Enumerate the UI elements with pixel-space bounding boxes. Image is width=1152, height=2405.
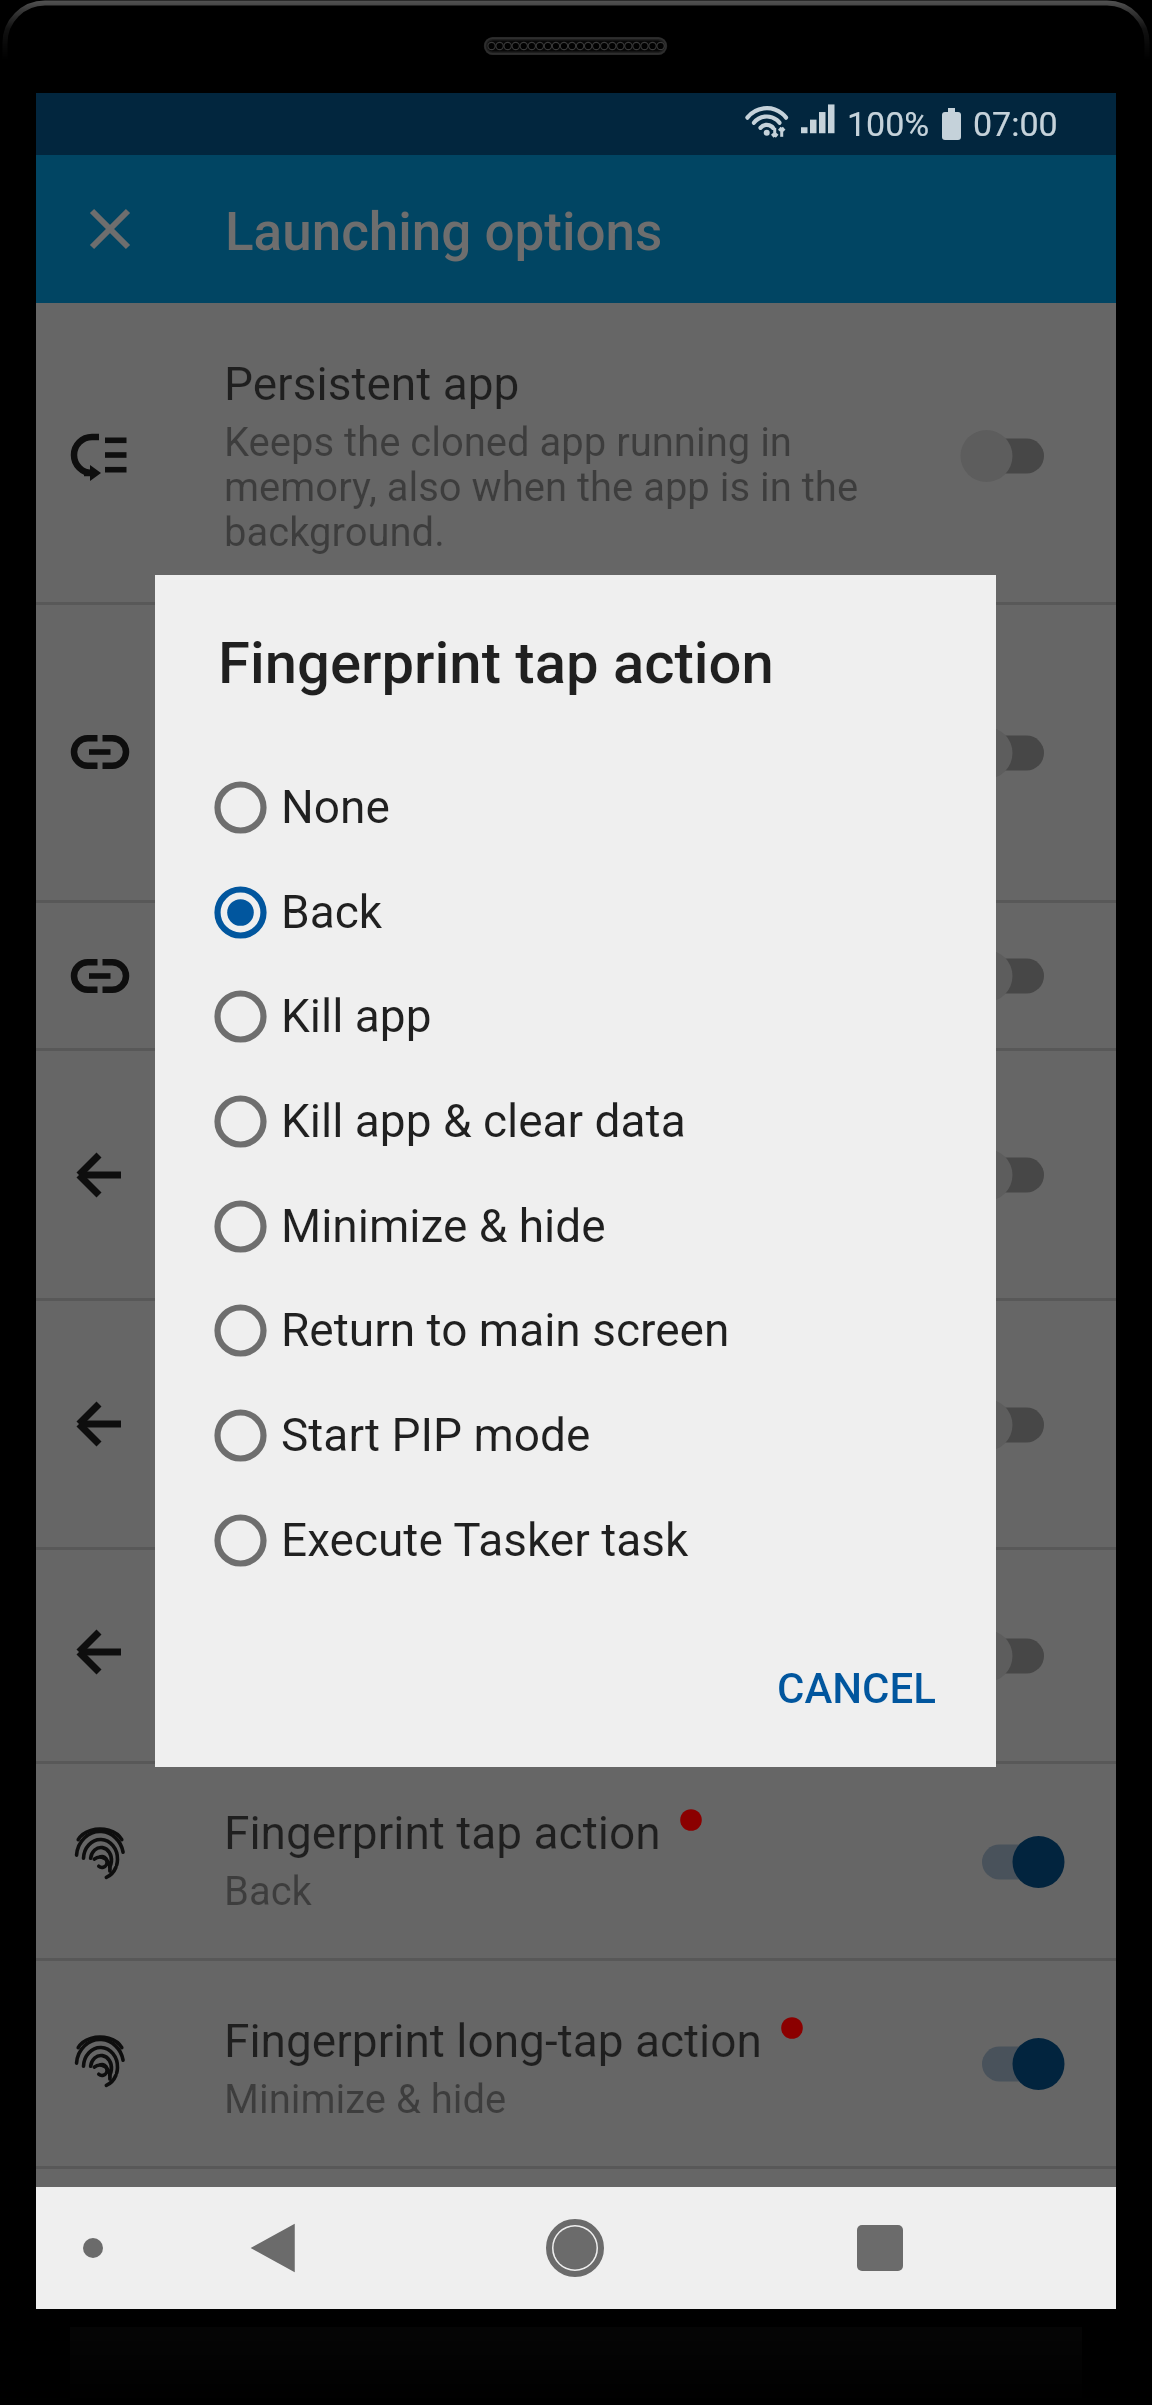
staticText: Minimize & hide	[281, 1199, 606, 1253]
staticText: Return to main screen	[281, 1303, 730, 1357]
button[interactable]: Home	[514, 2187, 636, 2309]
button[interactable]: Open links in this app	[36, 604, 1116, 902]
staticText: Exit on back	[224, 1351, 472, 1405]
staticText: Keeps the cloned app running in memory, …	[224, 419, 924, 555]
staticText: Open links in this app	[224, 655, 661, 709]
button[interactable]: Recents	[819, 2187, 941, 2309]
staticText: Fingerprint long-tap action	[224, 2014, 762, 2068]
button[interactable]: CANCEL	[745, 1640, 968, 1737]
staticText: Ask for confirmation before the clone ex…	[224, 1662, 924, 1753]
staticText: 100%	[847, 104, 930, 144]
button[interactable]: Minimize & hide	[155, 1174, 996, 1278]
staticText: Back to home	[224, 1102, 506, 1156]
staticText: Fingerprint tap action	[218, 629, 774, 697]
staticText: Persistent app	[224, 357, 520, 411]
staticText: Execute Tasker task	[281, 1513, 689, 1567]
button[interactable]: Return to main screen	[155, 1278, 996, 1382]
staticText: Fingerprint tap action	[224, 1806, 661, 1860]
staticText: 07:00	[973, 104, 1058, 144]
button[interactable]: Back to home	[36, 1050, 1116, 1300]
staticText: Pressing back twice closes the cloned ap…	[224, 1413, 924, 1504]
button[interactable]: Fingerprint tap action	[36, 1763, 1116, 1960]
staticText: Kill app	[281, 989, 432, 1043]
staticText: Start PIP mode	[281, 1408, 591, 1462]
staticText: Intercept links in this clone	[224, 992, 924, 1039]
staticText: Links in the cloned app stay inside the …	[224, 717, 924, 853]
button[interactable]: None	[155, 755, 996, 859]
staticText: None	[281, 780, 390, 834]
button[interactable]: Persistent app	[36, 308, 1116, 604]
button[interactable]: Fingerprint long-tap action	[36, 1960, 1116, 2168]
button[interactable]: Close	[74, 193, 146, 265]
button[interactable]: Back	[214, 2187, 336, 2309]
staticText: Back	[281, 885, 383, 939]
button[interactable]: Kill app	[155, 964, 996, 1068]
staticText: Force open links	[224, 930, 559, 984]
staticText: Kill app & clear data	[281, 1094, 686, 1148]
staticText: Pressing back returns to the home screen…	[224, 1164, 924, 1255]
button[interactable]: Force open links	[36, 902, 1116, 1050]
button[interactable]: Back	[155, 860, 996, 964]
button[interactable]: Exit on back	[36, 1300, 1116, 1549]
staticText: Launching options	[225, 201, 663, 263]
staticText: CANCEL	[777, 1664, 936, 1713]
staticText: Minimize & hide	[224, 2076, 924, 2123]
button[interactable]: Start PIP mode	[155, 1383, 996, 1487]
button[interactable]: Confirm exit	[36, 1549, 1116, 1763]
staticText: Back	[224, 1868, 924, 1915]
button[interactable]: Execute Tasker task	[155, 1488, 996, 1592]
button[interactable]: Kill app & clear data	[155, 1069, 996, 1173]
